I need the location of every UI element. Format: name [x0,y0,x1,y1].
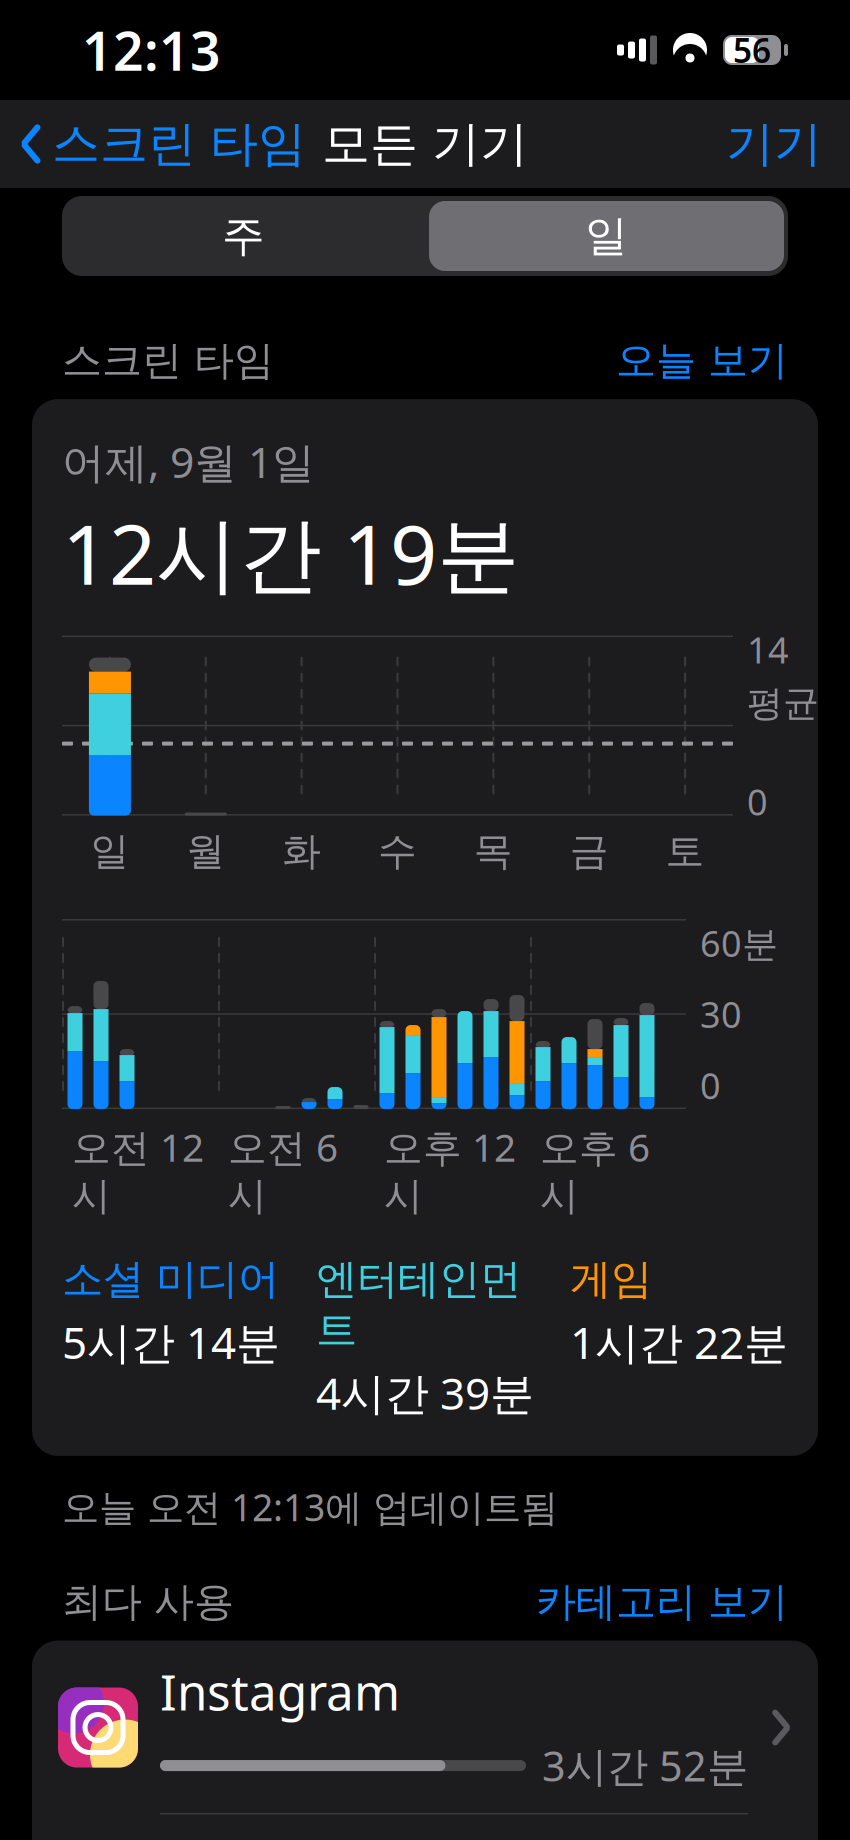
staticText: 30 [700,990,742,1038]
staticText: 카테고리 보기 [536,1577,788,1626]
staticText: 0 [747,778,768,825]
staticText: 기기 [726,114,822,173]
staticText: 4시간 39분 [316,1363,534,1422]
staticText: 모든 기기 [322,114,528,173]
button[interactable]: 카테고리 보기 [536,1577,788,1626]
staticText: 오후 6시 [540,1121,650,1220]
staticText: 오늘 보기 [616,336,788,385]
staticText: 5시간 14분 [62,1313,280,1371]
staticText: 14 [747,626,789,673]
staticText: 주 [222,210,265,262]
staticText: 일 [90,828,129,875]
button[interactable]: Instagram [32,1641,818,1814]
button[interactable]: 주 [62,198,425,274]
staticText: 화 [282,828,321,875]
staticText: 0 [700,1061,721,1109]
staticText: 오후 12시 [384,1121,516,1220]
staticText: 최다 사용 [62,1577,234,1626]
staticText: 금 [570,828,609,875]
staticText: 어제, 9월 1일 [62,433,315,490]
staticText: 토 [666,828,705,875]
staticText: 스크린 타임 [52,114,306,173]
staticText: 오전 6시 [228,1121,338,1220]
button[interactable]: 기기 [726,102,850,185]
staticText: 소셜 미디어 [62,1254,279,1305]
button[interactable]: 오늘 보기 [616,336,788,385]
staticText: 목 [474,828,513,875]
staticText: 일 [585,210,628,262]
button[interactable]: 일 [425,197,788,275]
button[interactable]: 스크린 타임 [0,102,306,185]
staticText: 12시간 19분 [62,498,520,608]
staticText: 오늘 오전 12:13에 업데이트됨 [62,1482,558,1531]
staticText: 1시간 22분 [570,1313,788,1371]
staticText: 수 [378,828,417,875]
staticText: 게임 [570,1254,652,1305]
staticText: 월 [186,828,225,875]
staticText: Instagram [160,1659,400,1724]
staticText: 12:13 [82,15,221,85]
staticText: 오전 12시 [72,1121,204,1220]
staticText: 평균 [747,681,819,726]
staticText: 엔터테인먼트 [316,1254,521,1355]
staticText: 3시간 52분 [542,1738,748,1793]
staticText: 56 [733,28,771,72]
staticText: 스크린 타임 [62,336,274,385]
staticText: 60분 [700,919,778,967]
